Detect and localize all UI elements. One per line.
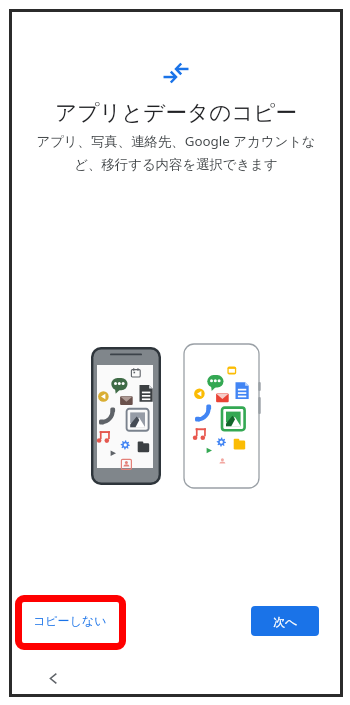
staticText: ど、移行する内容を選択できます <box>12 156 340 173</box>
button[interactable]: コピーしない <box>25 607 115 634</box>
button[interactable]: Back <box>38 663 68 693</box>
staticText: アプリとデータのコピー <box>12 99 340 126</box>
staticText: 次へ <box>273 614 298 629</box>
staticText: コピーしない <box>33 613 107 628</box>
button[interactable]: 次へ <box>251 606 319 636</box>
staticText: アプリ、写真、連絡先、Google アカウントな <box>12 132 340 150</box>
